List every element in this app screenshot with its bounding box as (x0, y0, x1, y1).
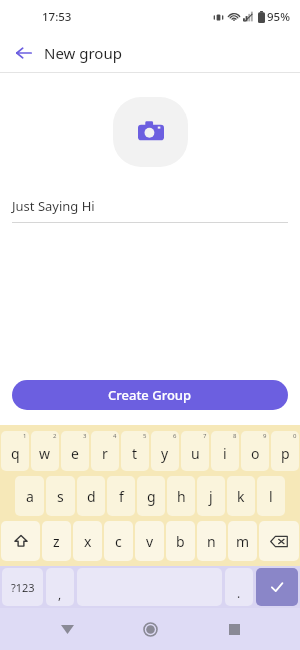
button[interactable]: 9 (241, 431, 269, 471)
staticText: 2 (53, 432, 57, 440)
staticText: m (236, 532, 250, 551)
staticText: x (84, 532, 92, 551)
staticText: 17:53 (42, 9, 72, 25)
staticText: v (146, 532, 154, 551)
staticText: 6 (173, 432, 177, 440)
staticText: 0 (293, 432, 297, 440)
staticText: 7 (203, 432, 207, 440)
staticText: n (207, 532, 216, 551)
button[interactable]: Shift (1, 521, 40, 561)
staticText: h (177, 487, 186, 506)
staticText: t (132, 444, 138, 463)
button[interactable]: n (197, 521, 226, 561)
button[interactable]: 7 (181, 431, 209, 471)
button[interactable]: 4 (91, 431, 119, 471)
staticText: q (11, 444, 20, 463)
staticText: e (71, 444, 79, 463)
staticText: d (87, 487, 96, 506)
button[interactable]: v (135, 521, 164, 561)
button[interactable]: l (257, 476, 285, 516)
button[interactable]: k (227, 476, 255, 516)
staticText: j (209, 487, 213, 506)
button[interactable]: Comma (46, 568, 74, 606)
staticText: , (58, 586, 62, 602)
button[interactable]: Period (225, 568, 253, 606)
button[interactable]: Backspace (259, 521, 299, 561)
button[interactable]: x (73, 521, 102, 561)
staticText: ?123 (11, 580, 35, 595)
button[interactable]: Add group photo (113, 97, 188, 167)
staticText: l (269, 487, 273, 506)
button[interactable]: Home (133, 612, 167, 646)
staticText: 5 (143, 432, 147, 440)
button[interactable]: 3 (61, 431, 89, 471)
button[interactable]: c (104, 521, 133, 561)
button[interactable]: 8 (211, 431, 239, 471)
button[interactable]: 6 (151, 431, 179, 471)
staticText: c (115, 532, 122, 551)
staticText: z (53, 532, 60, 551)
staticText: u (191, 444, 200, 463)
button[interactable]: Back (8, 37, 40, 69)
staticText: r (102, 444, 108, 463)
staticText: . (237, 585, 241, 601)
staticText: f (119, 487, 124, 506)
button[interactable]: 1 (1, 431, 29, 471)
button[interactable]: 0 (271, 431, 299, 471)
button[interactable]: 2 (31, 431, 59, 471)
button[interactable]: Create Group (12, 380, 288, 410)
button[interactable]: Recent apps (217, 612, 251, 646)
button[interactable]: Enter (256, 568, 298, 606)
button[interactable]: d (77, 476, 105, 516)
button[interactable]: b (166, 521, 195, 561)
button[interactable]: f (107, 476, 135, 516)
staticText: w (39, 444, 51, 463)
staticText: g (147, 487, 156, 506)
staticText: y (161, 444, 169, 463)
staticText: 1 (23, 432, 27, 440)
staticText: k (237, 487, 245, 506)
staticText: b (176, 532, 185, 551)
staticText: i (223, 444, 227, 463)
staticText: 9 (263, 432, 267, 440)
button[interactable]: z (42, 521, 71, 561)
staticText: p (281, 444, 290, 463)
staticText: Just Saying Hi (12, 197, 95, 215)
button[interactable]: s (46, 476, 75, 516)
staticText: o (251, 444, 260, 463)
staticText: 4 (113, 432, 117, 440)
staticText: a (26, 487, 34, 506)
button[interactable]: h (167, 476, 195, 516)
staticText: s (57, 487, 64, 506)
staticText: 95% (267, 9, 290, 25)
button[interactable]: a (15, 476, 44, 516)
staticText: Create Group (108, 386, 192, 404)
button[interactable]: m (228, 521, 257, 561)
button[interactable]: 5 (121, 431, 149, 471)
button[interactable]: j (197, 476, 225, 516)
button[interactable]: Back (50, 612, 84, 646)
button[interactable]: g (137, 476, 165, 516)
staticText: 3 (83, 432, 87, 440)
staticText: New group (44, 43, 122, 63)
button[interactable]: ?123 (2, 568, 43, 606)
staticText: 8 (233, 432, 237, 440)
